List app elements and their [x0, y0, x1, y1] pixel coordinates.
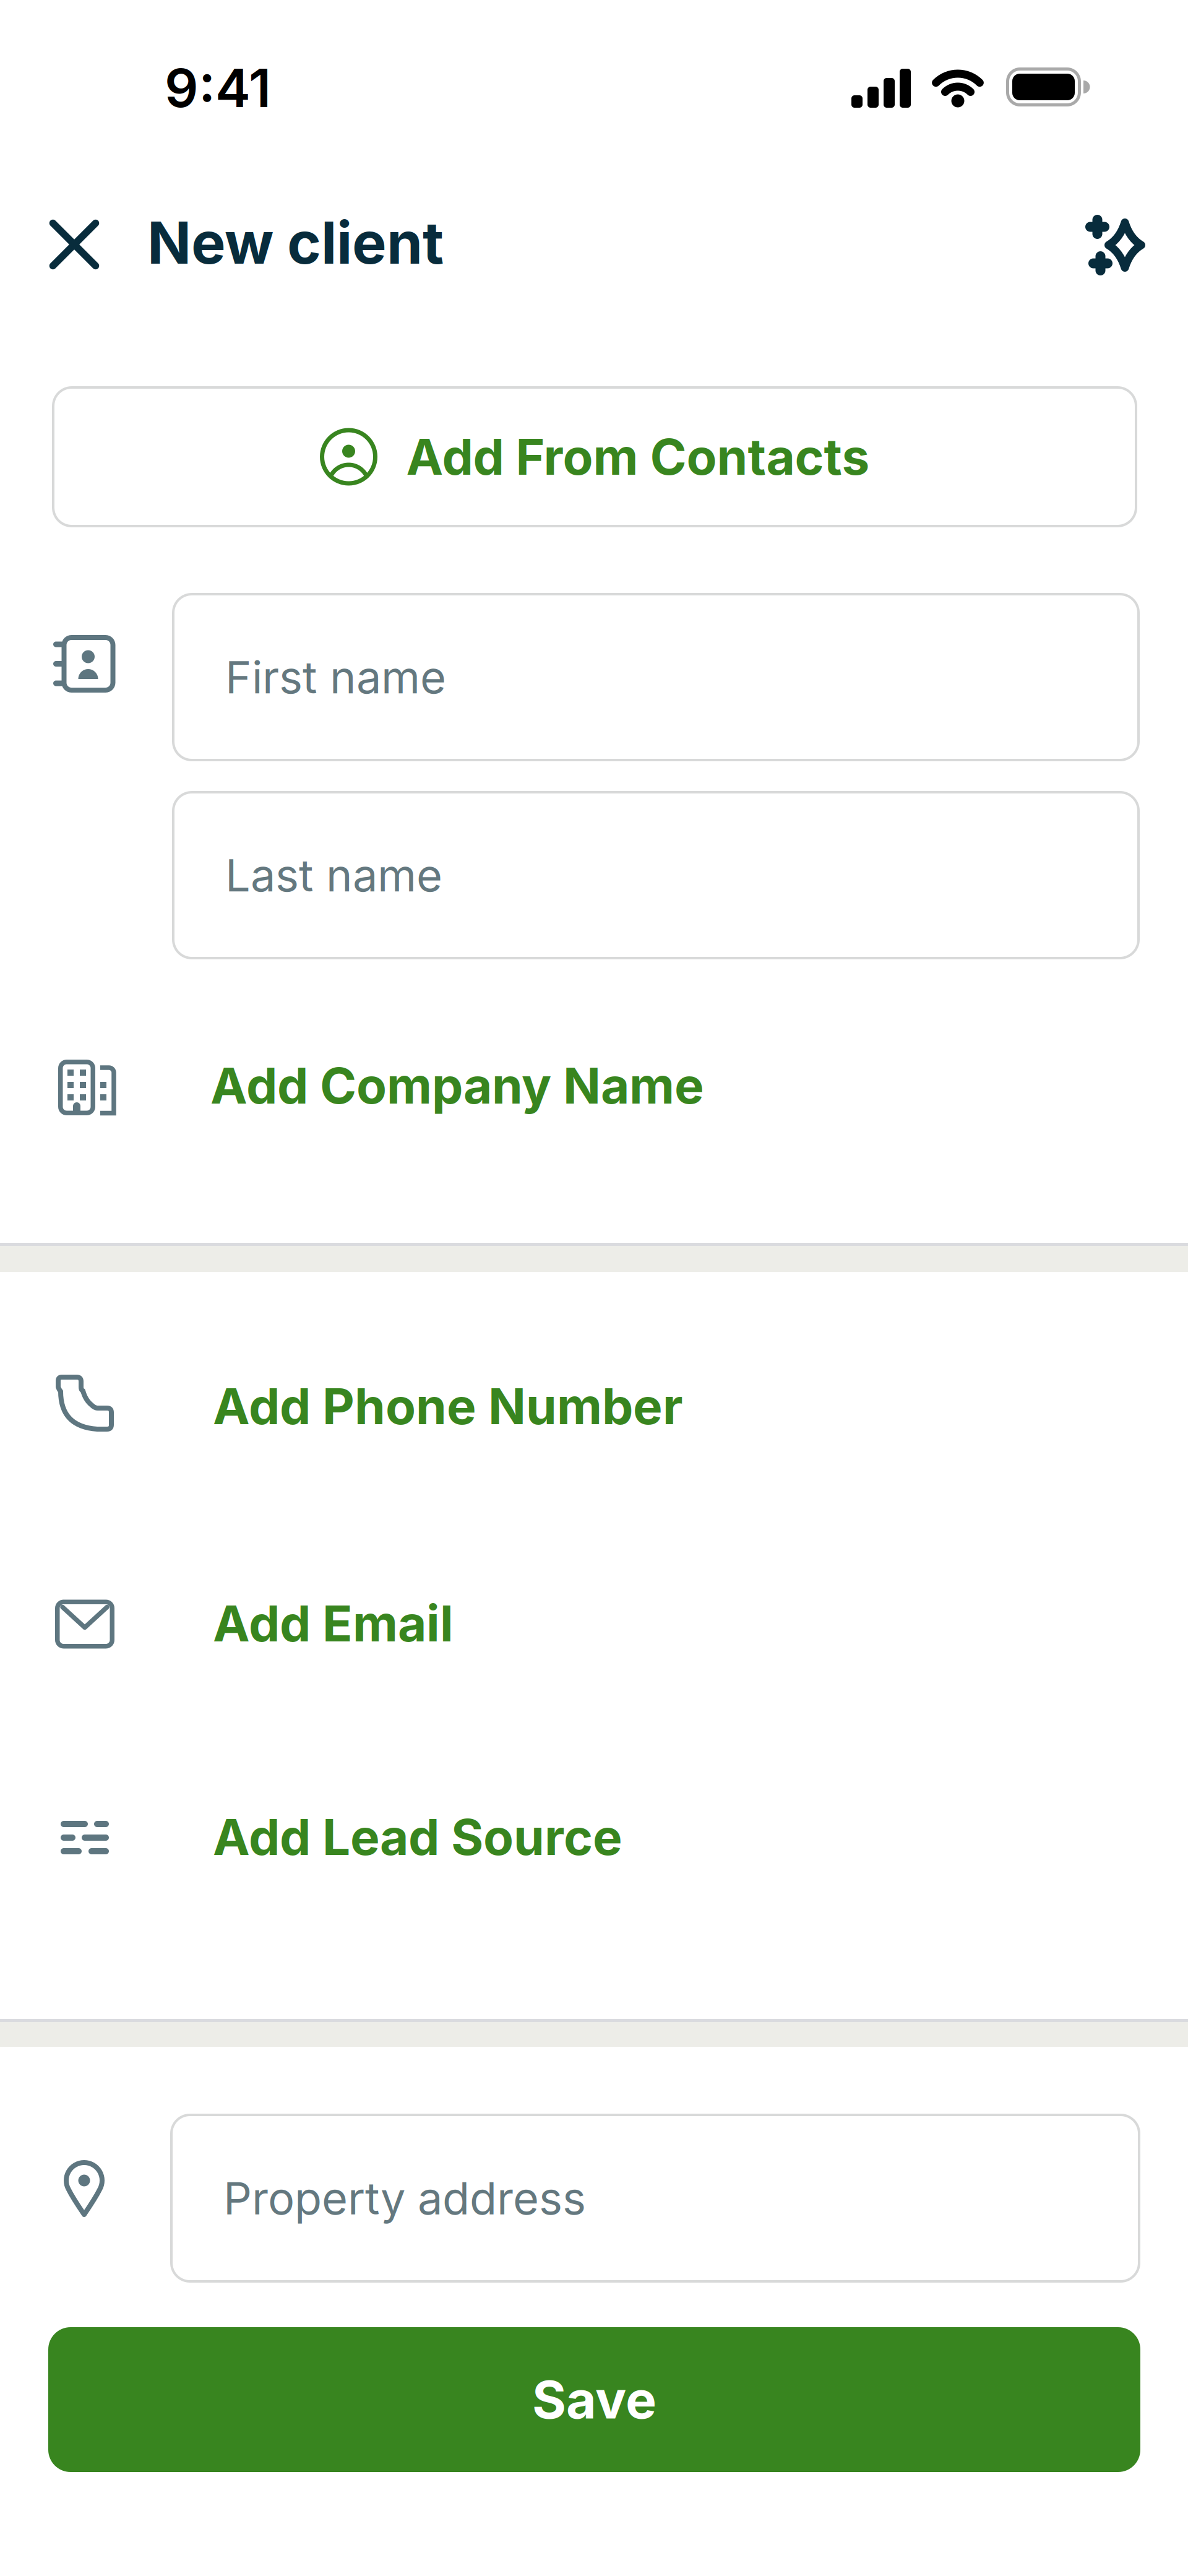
button[interactable]: Save: [48, 2327, 1140, 2472]
staticText: New client: [147, 209, 444, 277]
staticText: Save: [532, 2369, 656, 2430]
button[interactable]: Last name: [172, 791, 1140, 959]
button[interactable]: Property address: [170, 2114, 1140, 2283]
button[interactable]: Close: [31, 201, 118, 288]
button[interactable]: AI assist: [1070, 202, 1157, 288]
staticText: Add From Contacts: [406, 428, 870, 486]
button[interactable]: Add From Contacts: [52, 386, 1137, 527]
staticText: Last name: [225, 849, 442, 901]
button[interactable]: Add Email: [213, 1594, 454, 1653]
staticText: First name: [225, 651, 446, 703]
staticText: Add Company Name: [210, 1056, 704, 1115]
staticText: Add Phone Number: [213, 1377, 683, 1435]
staticText: 9:41: [165, 57, 271, 119]
button[interactable]: Add Phone Number: [213, 1377, 683, 1435]
button[interactable]: Add Lead Source: [213, 1808, 622, 1866]
staticText: Property address: [223, 2172, 586, 2224]
staticText: Add Email: [213, 1594, 454, 1653]
button[interactable]: Add Company Name: [210, 1056, 704, 1115]
staticText: Add Lead Source: [213, 1808, 622, 1866]
button[interactable]: First name: [172, 593, 1140, 761]
